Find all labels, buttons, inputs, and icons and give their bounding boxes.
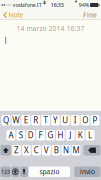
- staticText: H: [57, 130, 63, 140]
- button[interactable]: I: [71, 115, 80, 125]
- button[interactable]: R: [31, 115, 40, 125]
- button[interactable]: K: [76, 130, 85, 140]
- button[interactable]: P: [91, 115, 99, 125]
- staticText: Z: [14, 145, 19, 155]
- button[interactable]: Dictate: [20, 166, 28, 177]
- staticText: 123: [1, 168, 10, 175]
- staticText: Note: [9, 11, 24, 19]
- button[interactable]: O: [81, 115, 90, 125]
- button[interactable]: B: [52, 145, 61, 155]
- button[interactable]: Shift: [0, 145, 11, 155]
- button[interactable]: E: [21, 115, 30, 125]
- button[interactable]: Q: [1, 115, 10, 125]
- button[interactable]: 123: [0, 166, 10, 177]
- button[interactable]: C: [32, 145, 41, 155]
- button[interactable]: spazio: [29, 166, 70, 177]
- staticText: P: [92, 115, 97, 125]
- button[interactable]: Fine: [79, 10, 101, 20]
- staticText: Fine: [83, 11, 97, 19]
- button[interactable]: S: [16, 130, 25, 140]
- staticText: R: [33, 115, 38, 125]
- staticText: E: [24, 115, 28, 125]
- button[interactable]: invio: [74, 166, 100, 177]
- staticText: O: [82, 115, 88, 125]
- staticText: M: [72, 145, 79, 155]
- staticText: N: [63, 145, 69, 155]
- staticText: C: [34, 145, 39, 155]
- staticText: U: [62, 115, 68, 125]
- staticText: Q: [3, 115, 9, 125]
- button[interactable]: Z: [12, 145, 21, 155]
- staticText: J: [69, 130, 71, 140]
- button[interactable]: X: [22, 145, 31, 155]
- staticText: B: [54, 145, 59, 155]
- button[interactable]: Delete: [83, 145, 100, 155]
- button[interactable]: H: [56, 130, 65, 140]
- staticText: W: [12, 115, 19, 125]
- staticText: D: [28, 130, 34, 140]
- button[interactable]: Next keyboard: [11, 166, 19, 177]
- button[interactable]: D: [26, 130, 35, 140]
- button[interactable]: M: [71, 145, 80, 155]
- button[interactable]: W: [11, 115, 20, 125]
- button[interactable]: A: [6, 130, 15, 140]
- staticText: invio: [80, 167, 95, 176]
- staticText: 16:33: [51, 1, 64, 9]
- button[interactable]: T: [41, 115, 50, 125]
- staticText: spazio: [39, 167, 59, 176]
- staticText: F: [39, 130, 43, 140]
- button[interactable]: J: [66, 130, 75, 140]
- button[interactable]: G: [46, 130, 55, 140]
- staticText: L: [88, 130, 92, 140]
- staticText: I: [74, 115, 77, 125]
- staticText: G: [47, 130, 53, 140]
- staticText: K: [78, 130, 83, 140]
- staticText: T: [43, 115, 47, 125]
- button[interactable]: Note: [0, 10, 27, 20]
- button[interactable]: F: [36, 130, 45, 140]
- button[interactable]: N: [62, 145, 70, 155]
- button[interactable]: L: [86, 130, 95, 140]
- staticText: vodafone IT: [13, 1, 42, 9]
- button[interactable]: V: [42, 145, 51, 155]
- staticText: 94%: [79, 1, 89, 9]
- button[interactable]: U: [61, 115, 70, 125]
- staticText: Y: [53, 115, 58, 125]
- staticText: 14 marzo 2014 16:37: [16, 24, 84, 33]
- button[interactable]: Y: [51, 115, 60, 125]
- staticText: S: [19, 130, 23, 140]
- staticText: A: [8, 130, 13, 140]
- staticText: X: [24, 145, 29, 155]
- staticText: V: [44, 145, 49, 155]
